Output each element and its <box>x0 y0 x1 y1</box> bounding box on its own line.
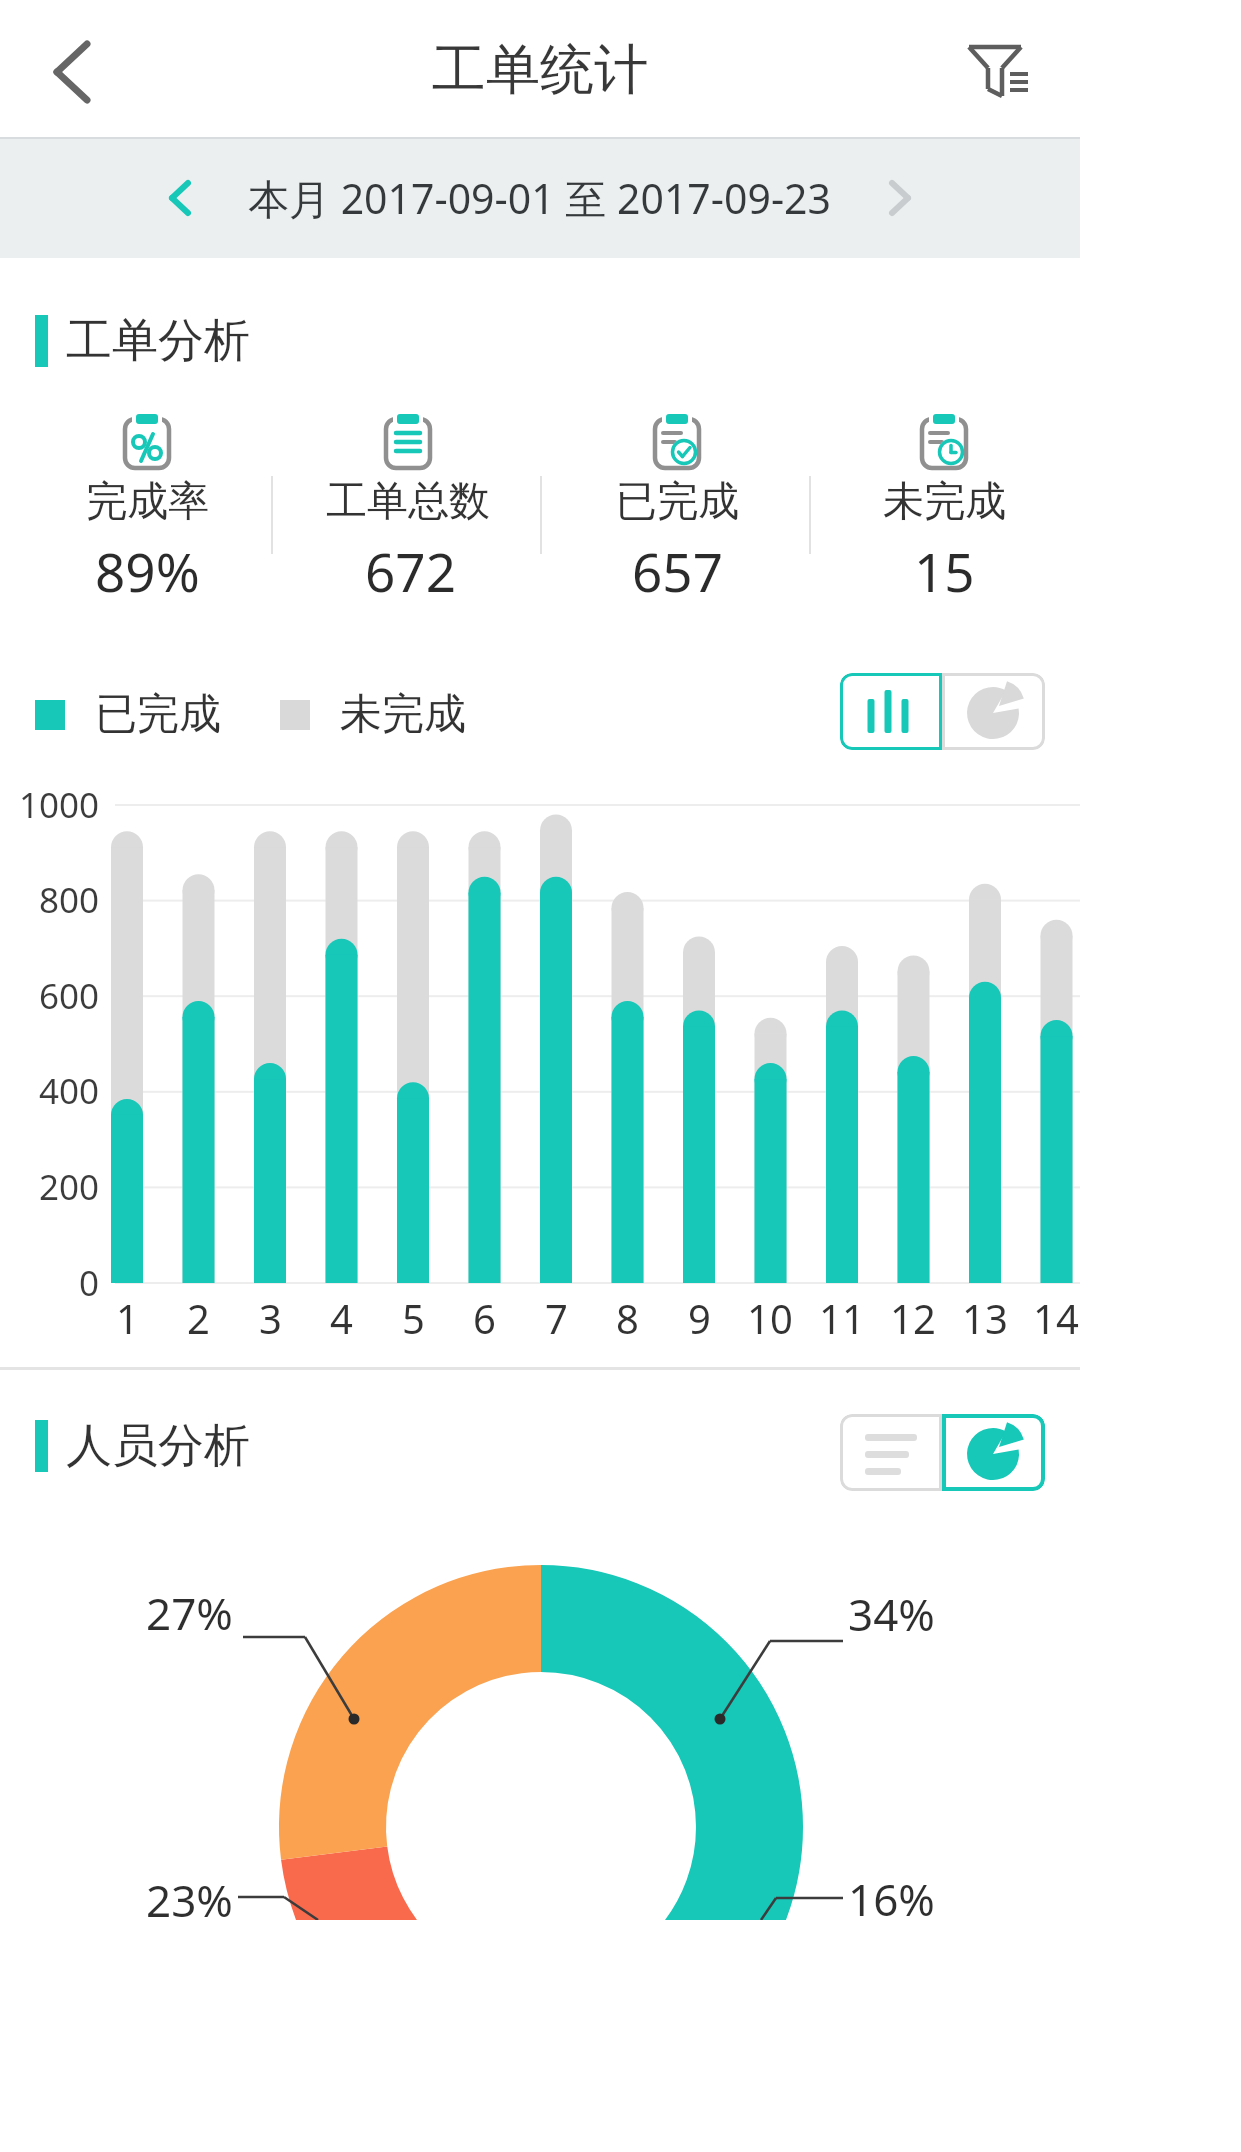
staticText: 10 <box>747 1291 793 1345</box>
button[interactable] <box>135 150 225 245</box>
staticText: 0 <box>79 1259 100 1307</box>
staticText: 3 <box>259 1291 282 1345</box>
staticText: 11 <box>819 1291 865 1345</box>
button[interactable] <box>855 150 945 245</box>
button[interactable] <box>942 1414 1045 1491</box>
staticText: 27% <box>146 1583 233 1643</box>
staticText: 本月 2017-09-01 至 2017-09-23 <box>248 170 832 226</box>
staticText: 16% <box>848 1869 935 1929</box>
button[interactable] <box>20 20 120 120</box>
staticText: 89% <box>95 535 200 607</box>
staticText: 5 <box>402 1291 425 1345</box>
staticText: 未完成 <box>340 688 466 741</box>
staticText: 14 <box>1033 1291 1079 1345</box>
staticText: 400 <box>39 1067 100 1115</box>
staticText: 6 <box>473 1291 496 1345</box>
staticText: 1 <box>116 1291 139 1345</box>
button[interactable] <box>840 673 942 750</box>
staticText: 12 <box>890 1291 936 1345</box>
staticText: 已完成 <box>616 476 739 528</box>
staticText: 工单总数 <box>326 476 490 528</box>
staticText: 未完成 <box>883 476 1006 528</box>
button[interactable] <box>840 1414 942 1491</box>
staticText: 657 <box>632 535 723 607</box>
staticText: 8 <box>616 1291 639 1345</box>
button[interactable] <box>942 673 1045 750</box>
staticText: 工单统计 <box>432 36 648 104</box>
staticText: 672 <box>365 535 456 607</box>
staticText: 800 <box>39 876 100 924</box>
staticText: 600 <box>39 972 100 1020</box>
staticText: 23% <box>146 1870 233 1930</box>
staticText: 人员分析 <box>66 1417 250 1475</box>
staticText: 34% <box>848 1584 935 1644</box>
staticText: 完成率 <box>86 476 209 528</box>
staticText: 13 <box>962 1291 1008 1345</box>
staticText: 1000 <box>19 781 100 829</box>
staticText: 已完成 <box>95 688 221 741</box>
staticText: 4 <box>330 1291 353 1345</box>
staticText: 9 <box>688 1291 711 1345</box>
staticText: 15 <box>914 535 975 607</box>
staticText: 7 <box>545 1291 568 1345</box>
button[interactable] <box>945 25 1055 115</box>
staticText: 2 <box>187 1291 210 1345</box>
staticText: 工单分析 <box>66 312 250 370</box>
staticText: 200 <box>39 1163 100 1211</box>
